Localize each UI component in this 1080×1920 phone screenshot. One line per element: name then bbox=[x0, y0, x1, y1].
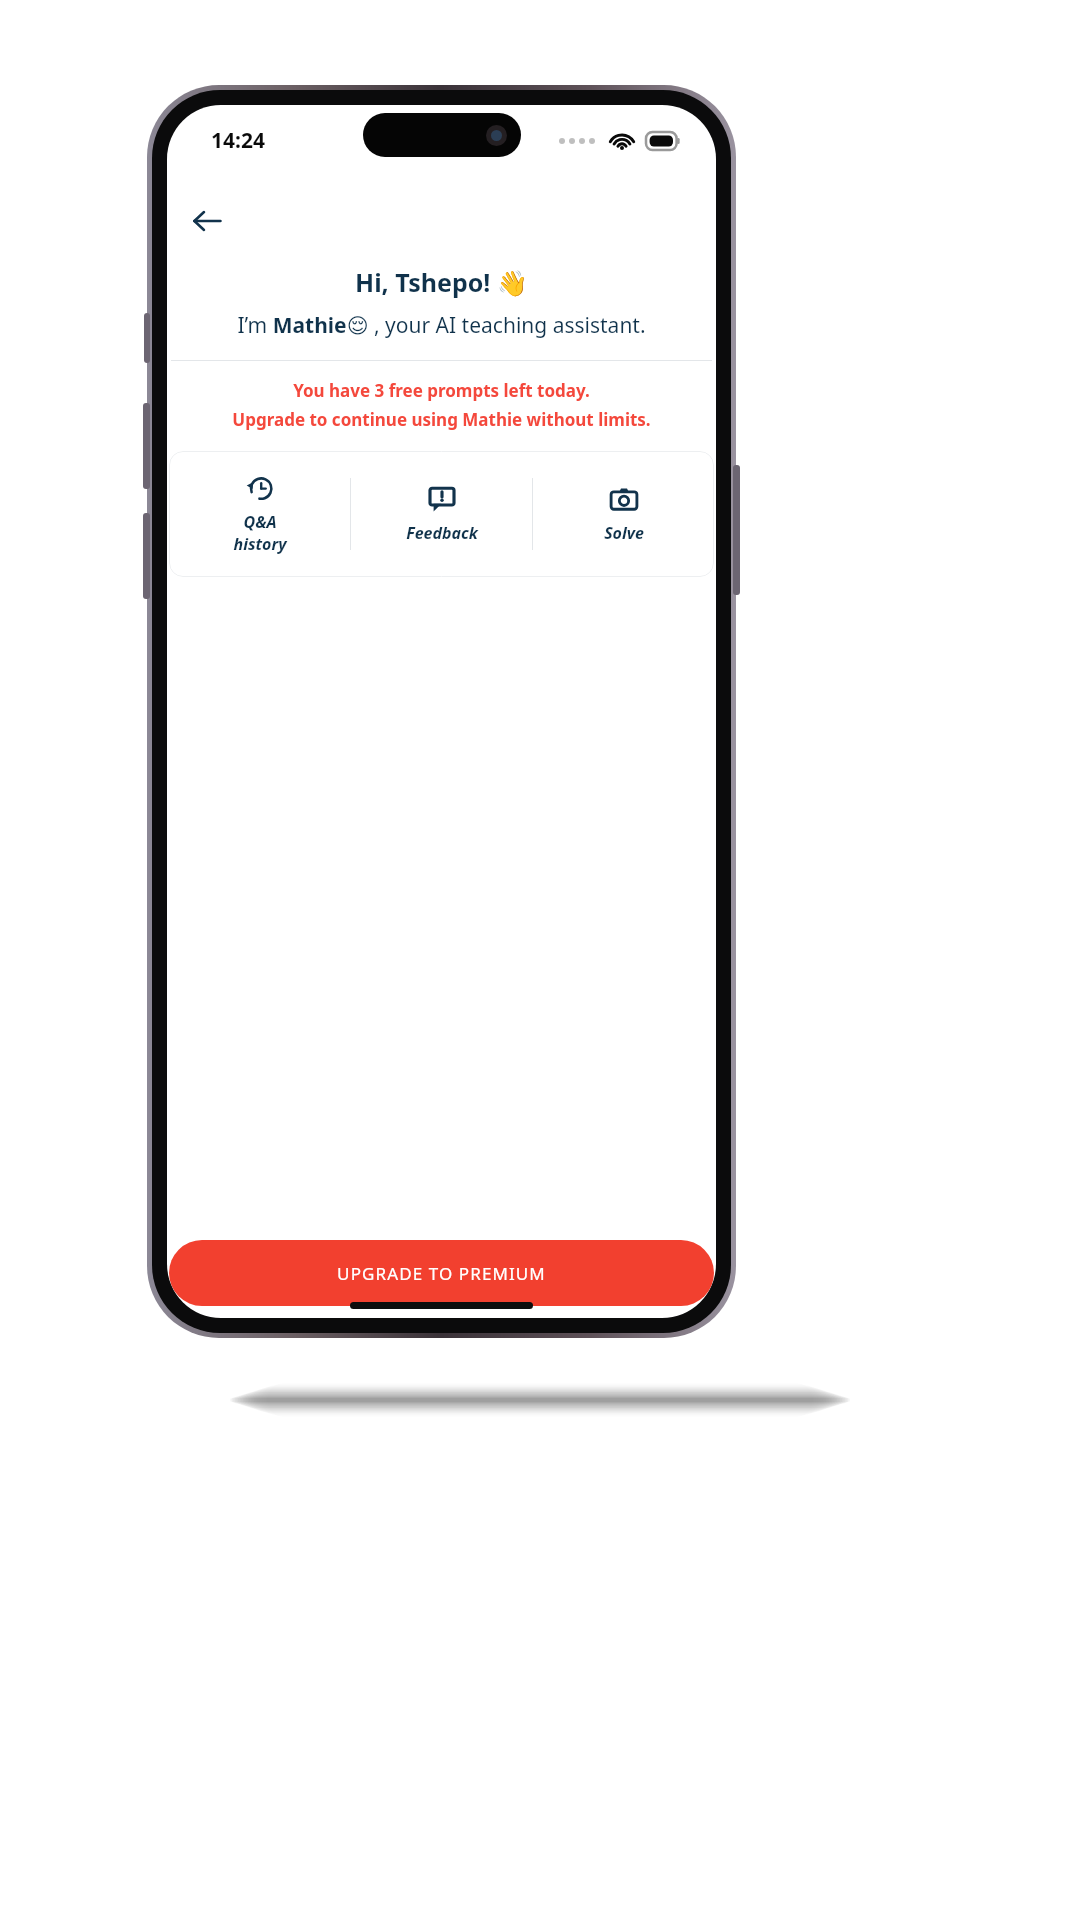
staticText: Solve bbox=[604, 522, 644, 544]
staticText: Feedback bbox=[406, 522, 478, 544]
staticText: Q&A bbox=[243, 511, 277, 533]
staticText: I’m Mathie😌 , your AI teaching assistant… bbox=[167, 311, 716, 340]
staticText: UPGRADE TO PREMIUM bbox=[337, 1262, 546, 1285]
staticText: Hi, Tshepo! 👋 bbox=[167, 265, 716, 299]
staticText: You have 3 free prompts left today. bbox=[167, 379, 716, 402]
staticText: Upgrade to continue using Mathie without… bbox=[167, 408, 716, 431]
button[interactable]: Back bbox=[181, 195, 233, 247]
staticText: 14:24 bbox=[211, 126, 265, 155]
button[interactable]: UPGRADE TO PREMIUM bbox=[169, 1240, 714, 1306]
button[interactable]: Q and A history bbox=[169, 451, 350, 577]
button[interactable]: Solve bbox=[533, 451, 714, 577]
button[interactable]: Feedback bbox=[351, 451, 532, 577]
staticText: history bbox=[233, 533, 287, 555]
